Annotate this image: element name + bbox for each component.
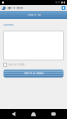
button[interactable]: Save bbox=[62, 6, 65, 10]
staticText: confirm as checked bbox=[24, 72, 43, 75]
button[interactable]: Mark job complete bbox=[0, 60, 67, 69]
button[interactable]: Recent apps bbox=[47, 109, 60, 119]
staticText: Mark job complete bbox=[8, 64, 25, 66]
button[interactable]: confirm as checked bbox=[3, 69, 63, 77]
button[interactable]: Home bbox=[27, 109, 40, 119]
staticText: Comments bbox=[3, 23, 14, 26]
staticText: Checklist Job bbox=[26, 14, 40, 16]
staticText: 9:41 bbox=[55, 1, 60, 4]
button[interactable]: Back bbox=[7, 109, 20, 119]
staticText: agility for android bbox=[7, 7, 22, 9]
